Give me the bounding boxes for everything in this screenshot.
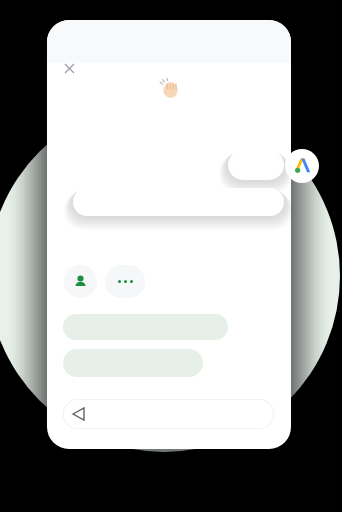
- button[interactable]: [63, 349, 203, 377]
- button[interactable]: [73, 188, 284, 216]
- button[interactable]: Contact: [64, 265, 97, 298]
- button[interactable]: More options: [105, 265, 145, 298]
- button[interactable]: Message input: [63, 399, 274, 429]
- button[interactable]: [63, 314, 228, 340]
- button[interactable]: Close: [57, 56, 81, 80]
- button[interactable]: Google Ads: [285, 149, 319, 183]
- button[interactable]: [228, 150, 284, 180]
